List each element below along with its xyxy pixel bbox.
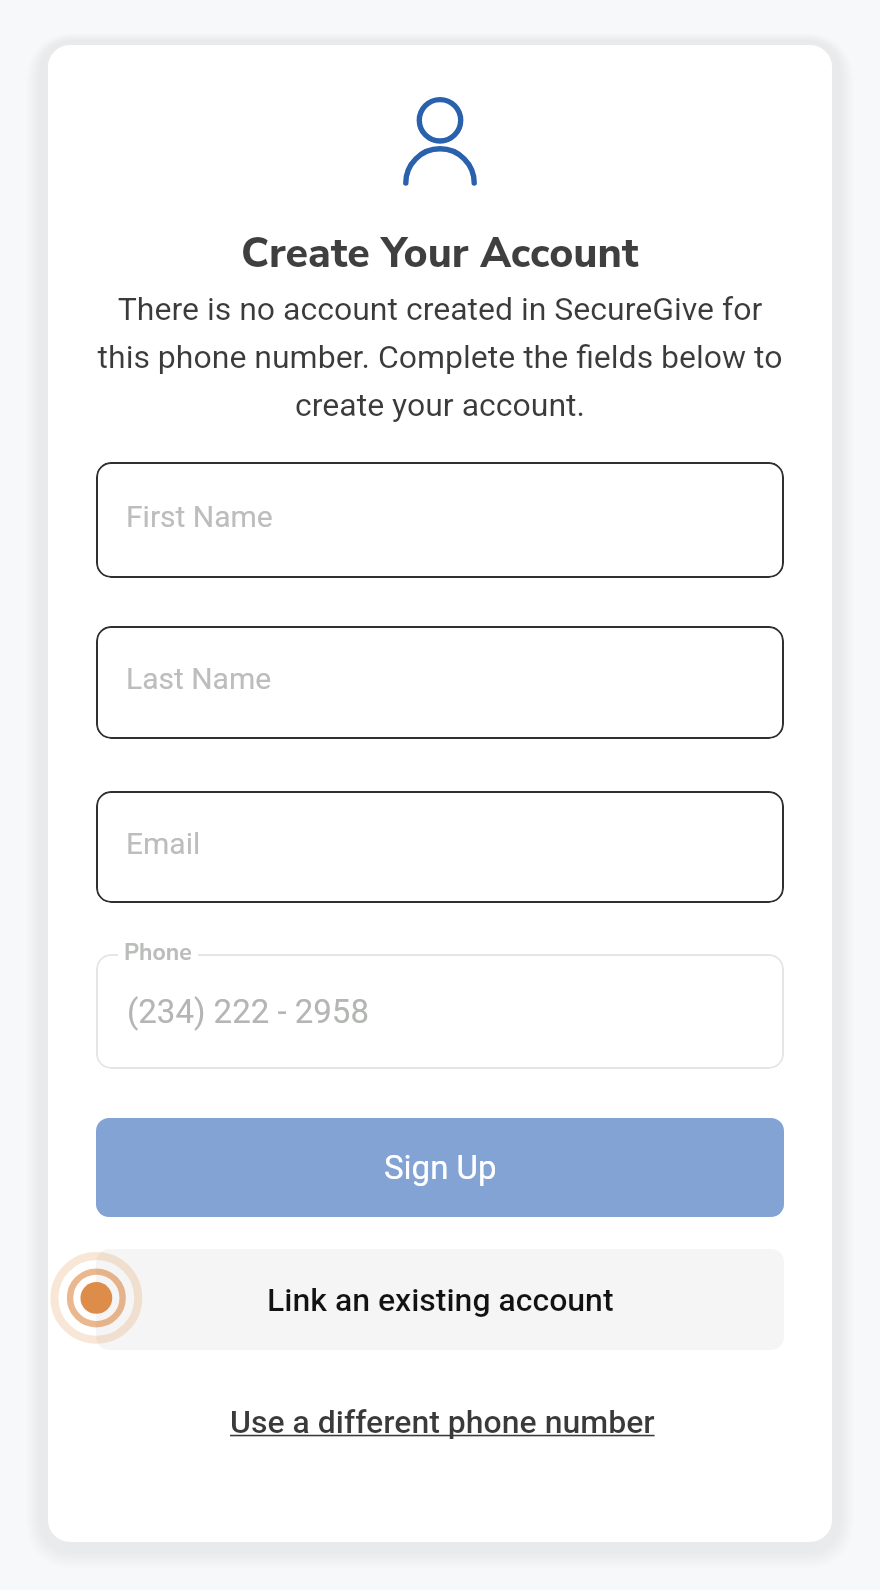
staticText: Use a different phone number (230, 1403, 655, 1441)
button[interactable]: First Name (96, 462, 784, 578)
staticText: Link an existing account (267, 1281, 614, 1319)
button[interactable]: Use a different phone number (230, 1403, 655, 1441)
other: Tap indicator (46, 1248, 146, 1348)
button[interactable]: Last Name (96, 626, 784, 739)
staticText: Phone (124, 937, 192, 968)
button[interactable]: Sign Up (96, 1118, 784, 1217)
button[interactable]: Link an existing account (96, 1249, 784, 1350)
button[interactable]: (234) 222 - 2958 (96, 954, 784, 1069)
staticText: Last Name (126, 661, 272, 696)
staticText: There is no account created in SecureGiv… (95, 290, 785, 424)
button[interactable]: Email (96, 791, 784, 903)
staticText: (234) 222 - 2958 (127, 992, 369, 1031)
staticText: Create Your Account (241, 226, 639, 282)
staticText: First Name (126, 499, 273, 534)
staticText: Sign Up (384, 1148, 497, 1187)
staticText: Email (126, 826, 201, 861)
other: Account (392, 92, 488, 188)
